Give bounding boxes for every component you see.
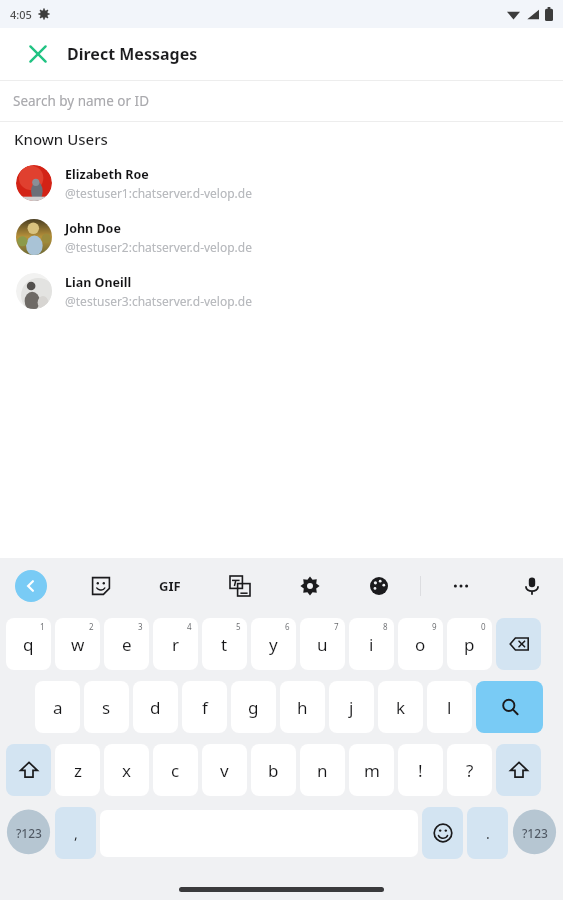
button[interactable]: Emoji	[422, 807, 463, 859]
staticText: l	[447, 696, 452, 719]
button[interactable]: John Doe	[0, 210, 563, 264]
button[interactable]: v	[202, 744, 247, 796]
button[interactable]: ?123	[512, 807, 557, 859]
staticText: 6	[285, 621, 290, 632]
staticText: John Doe	[65, 220, 121, 237]
staticText: GIF	[159, 577, 181, 595]
staticText: 4	[187, 621, 192, 632]
button[interactable]: Close	[16, 32, 60, 76]
staticText: z	[74, 759, 82, 782]
staticText: .	[486, 824, 490, 843]
staticText: e	[122, 633, 132, 656]
staticText: @testuser3:chatserver.d-velop.de	[65, 293, 252, 309]
button[interactable]: GIF	[152, 568, 188, 604]
button[interactable]: .	[467, 807, 508, 859]
staticText: Known Users	[14, 129, 108, 149]
button[interactable]: g	[231, 681, 276, 733]
staticText: d	[150, 696, 161, 719]
staticText: p	[464, 633, 475, 656]
button[interactable]: p	[447, 618, 492, 670]
button[interactable]: s	[84, 681, 129, 733]
button[interactable]: j	[329, 681, 374, 733]
staticText: f	[202, 696, 208, 719]
button[interactable]: Theme	[361, 568, 397, 604]
button[interactable]: k	[378, 681, 423, 733]
staticText: r	[172, 633, 180, 656]
button[interactable]: Settings	[292, 568, 328, 604]
button[interactable]: n	[300, 744, 345, 796]
button[interactable]: ?	[447, 744, 492, 796]
button[interactable]: ,	[55, 807, 96, 859]
button[interactable]: ?123	[6, 807, 51, 859]
staticText: Elizabeth Roe	[65, 166, 149, 183]
staticText: 3	[138, 621, 143, 632]
button[interactable]: h	[280, 681, 325, 733]
button[interactable]: l	[427, 681, 472, 733]
button[interactable]: t	[202, 618, 247, 670]
button[interactable]: u	[300, 618, 345, 670]
button[interactable]: a	[35, 681, 80, 733]
staticText: ?	[466, 759, 474, 782]
staticText: ,	[74, 824, 78, 843]
button[interactable]: e	[104, 618, 149, 670]
staticText: Direct Messages	[67, 43, 198, 65]
staticText: 1	[40, 621, 45, 632]
staticText: v	[220, 759, 229, 782]
staticText: k	[396, 696, 406, 719]
staticText: j	[349, 696, 354, 719]
button[interactable]: x	[104, 744, 149, 796]
staticText: s	[102, 696, 111, 719]
staticText: ?123	[522, 825, 548, 841]
staticText: t	[221, 633, 228, 656]
staticText: n	[317, 759, 328, 782]
button[interactable]: Shift	[6, 744, 51, 796]
button[interactable]: Search	[476, 681, 543, 733]
button[interactable]: Elizabeth Roe	[0, 156, 563, 210]
staticText: m	[364, 759, 380, 782]
button[interactable]: Back	[15, 570, 47, 602]
staticText: @testuser1:chatserver.d-velop.de	[65, 185, 252, 201]
button[interactable]: More options	[443, 568, 479, 604]
staticText: u	[317, 633, 328, 656]
button[interactable]: m	[349, 744, 394, 796]
button[interactable]: f	[182, 681, 227, 733]
button[interactable]: Translate	[222, 568, 258, 604]
staticText: 7	[334, 621, 339, 632]
staticText: Lian Oneill	[65, 274, 132, 291]
staticText: !	[418, 759, 423, 782]
button[interactable]: Backspace	[496, 618, 541, 670]
button[interactable]: o	[398, 618, 443, 670]
staticText: 9	[432, 621, 437, 632]
button[interactable]: i	[349, 618, 394, 670]
staticText: @testuser2:chatserver.d-velop.de	[65, 239, 252, 255]
staticText: 4:05	[10, 7, 32, 22]
staticText: h	[297, 696, 308, 719]
button[interactable]: Search by name or ID	[0, 81, 563, 121]
button[interactable]: r	[153, 618, 198, 670]
button[interactable]: Stickers	[83, 568, 119, 604]
button[interactable]: Shift	[496, 744, 541, 796]
staticText: 5	[236, 621, 241, 632]
staticText: g	[248, 696, 259, 719]
button[interactable]: c	[153, 744, 198, 796]
staticText: x	[122, 759, 131, 782]
button[interactable]: Lian Oneill	[0, 264, 563, 318]
staticText: 8	[383, 621, 388, 632]
staticText: Search by name or ID	[13, 92, 150, 110]
staticText: q	[23, 633, 34, 656]
button[interactable]: y	[251, 618, 296, 670]
button[interactable]: q	[6, 618, 51, 670]
staticText: y	[269, 633, 278, 656]
button[interactable]: d	[133, 681, 178, 733]
button[interactable]: w	[55, 618, 100, 670]
button[interactable]: b	[251, 744, 296, 796]
button[interactable]: Voice input	[514, 568, 550, 604]
staticText: a	[53, 696, 63, 719]
staticText: 0	[481, 621, 486, 632]
button[interactable]: !	[398, 744, 443, 796]
staticText: b	[268, 759, 279, 782]
staticText: o	[415, 633, 426, 656]
button[interactable]: z	[55, 744, 100, 796]
staticText: c	[171, 759, 180, 782]
